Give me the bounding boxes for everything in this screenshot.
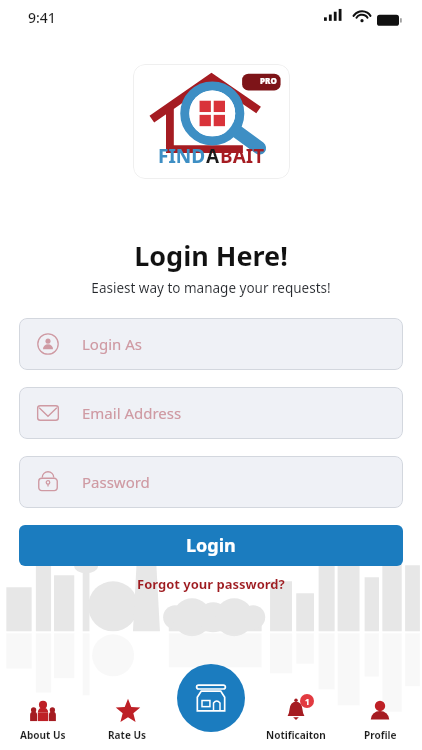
staticText: Rate Us	[108, 728, 147, 742]
staticText: Email Address	[82, 403, 182, 423]
staticText: Login Here!	[0, 237, 422, 274]
button[interactable]: Rate Us	[85, 690, 170, 750]
staticText: About Us	[20, 728, 66, 742]
staticText: Password	[82, 472, 150, 492]
button[interactable]: Profile	[338, 690, 422, 750]
button[interactable]: Shop home	[177, 664, 245, 732]
staticText: Login As	[82, 334, 142, 354]
button[interactable]: 1	[254, 690, 338, 750]
staticText: Notificaiton	[266, 728, 326, 742]
button[interactable]: Forgot your password?	[129, 572, 293, 596]
staticText: Login	[186, 533, 236, 558]
staticText: A	[206, 143, 220, 169]
staticText: BAIT	[220, 143, 265, 169]
button[interactable]: Login	[19, 525, 403, 566]
staticText: 1	[305, 696, 310, 707]
staticText: PRO	[260, 75, 277, 86]
button[interactable]: Login As	[19, 318, 403, 370]
button[interactable]: About Us	[0, 690, 85, 750]
staticText: Easiest way to manage your requests!	[0, 279, 422, 297]
staticText: Profile	[364, 728, 397, 742]
staticText: Forgot your password?	[137, 575, 285, 593]
button[interactable]: Password	[19, 456, 403, 508]
staticText: 9:41	[28, 8, 56, 27]
button[interactable]: Email Address	[19, 387, 403, 439]
staticText: FIND	[158, 143, 206, 169]
